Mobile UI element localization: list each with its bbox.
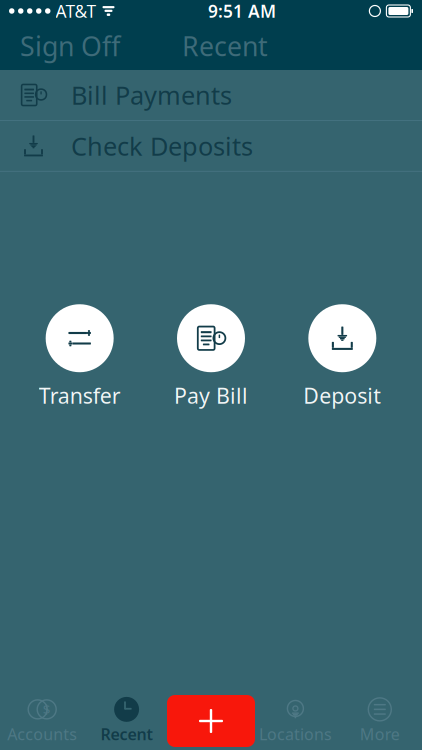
button[interactable]: Sign Off [0,23,140,69]
staticText: Pay Bill [174,381,248,409]
button[interactable]: $ [0,692,84,750]
staticText: $ [43,700,51,718]
staticText: Transfer [39,381,121,409]
staticText: Deposit [303,381,381,409]
button[interactable]: Deposit [277,304,408,409]
button[interactable]: Locations [253,692,338,750]
staticText: AT&T [55,0,96,22]
staticText: More [360,723,400,745]
staticText: Bill Payments [71,78,232,112]
staticText: 9:51 AM [208,0,276,22]
button[interactable]: Check Deposits [0,121,422,172]
staticText: Accounts [7,723,77,745]
staticText: Recent [182,28,268,64]
button[interactable]: Transfer [14,304,145,409]
staticText: Sign Off [20,28,120,64]
staticText: Locations [259,723,332,745]
button[interactable]: Bill Payments [0,70,422,121]
button[interactable]: More [338,692,422,750]
staticText: Recent [101,723,153,745]
button[interactable]: Recent [84,692,169,750]
button[interactable]: Cancel [167,695,255,747]
staticText: Check Deposits [71,129,253,163]
button[interactable]: Pay Bill [145,304,277,409]
